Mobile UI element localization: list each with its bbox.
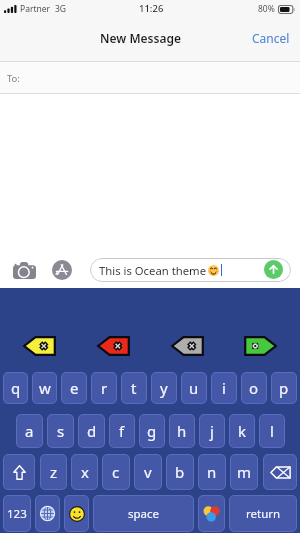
button[interactable]: d [78,414,105,448]
staticText: f [119,421,125,441]
button[interactable]: Next theme [244,336,277,356]
button[interactable]: App Store [49,257,75,283]
staticText: t [131,378,137,398]
button[interactable]: z [40,454,67,490]
staticText: d [87,421,97,441]
staticText: This is Ocean theme [99,263,207,278]
staticText: w [39,378,51,398]
button[interactable]: i [211,372,237,404]
button[interactable]: r [91,372,117,404]
staticText: a [25,421,34,441]
staticText: return [246,506,281,522]
button[interactable]: Camera [11,257,37,283]
staticText: space [128,506,160,522]
button[interactable]: l [259,414,285,448]
staticText: b [175,462,185,482]
staticText: j [210,421,214,441]
button[interactable]: Send [264,260,283,279]
staticText: p [279,378,289,398]
staticText: l [270,421,274,441]
button[interactable]: This is Ocean theme [90,258,291,282]
staticText: New Message [100,30,181,46]
button[interactable]: v [134,454,162,490]
staticText: Partner [20,3,51,15]
button[interactable]: Shift [3,454,35,490]
button[interactable]: k [229,414,255,448]
button[interactable]: u [181,372,207,404]
button[interactable]: Next keyboard [35,495,60,532]
button[interactable]: c [102,454,130,490]
button[interactable]: space [93,495,194,532]
staticText: x [81,462,89,482]
button[interactable]: g [139,414,165,448]
staticText: 123 [7,506,27,522]
button[interactable]: m [230,454,258,490]
staticText: o [249,378,259,398]
staticText: v [144,462,152,482]
button[interactable]: s [47,414,74,448]
staticText: u [189,378,199,398]
staticText: s [57,421,65,441]
staticText: i [222,378,226,398]
button[interactable]: h [169,414,195,448]
button[interactable]: 123 [3,495,31,532]
staticText: q [11,378,21,398]
button[interactable]: Previous theme [171,336,204,356]
button[interactable]: n [198,454,226,490]
staticText: m [237,462,252,482]
staticText: 3G [55,3,67,15]
staticText: r [101,378,108,398]
button[interactable]: e [61,372,87,404]
button[interactable]: Previous theme [23,336,56,356]
button[interactable]: return [229,495,297,532]
staticText: n [207,462,217,482]
staticText: e [70,378,79,398]
staticText: To: [7,72,20,85]
staticText: 11:26 [139,2,164,15]
staticText: g [147,421,157,441]
button[interactable]: Theme [198,495,225,532]
button[interactable]: Cancel [242,24,300,52]
button[interactable]: j [199,414,225,448]
button[interactable]: a [16,414,43,448]
button[interactable]: To: [0,62,300,94]
button[interactable]: Emoji [64,495,89,532]
button[interactable]: t [121,372,147,404]
button[interactable]: x [71,454,98,490]
staticText: z [50,462,58,482]
staticText: 80% [258,3,275,15]
staticText: y [160,378,168,398]
button[interactable]: f [109,414,135,448]
button[interactable]: Backspace [263,454,297,490]
staticText: Cancel [252,30,290,46]
button[interactable]: Previous theme [97,336,130,356]
staticText: c [112,462,120,482]
button[interactable]: p [271,372,297,404]
button[interactable]: q [3,372,28,404]
button[interactable]: o [241,372,267,404]
staticText: k [238,421,247,441]
button[interactable]: y [151,372,177,404]
button[interactable]: b [166,454,194,490]
staticText: h [177,421,187,441]
button[interactable]: w [32,372,57,404]
